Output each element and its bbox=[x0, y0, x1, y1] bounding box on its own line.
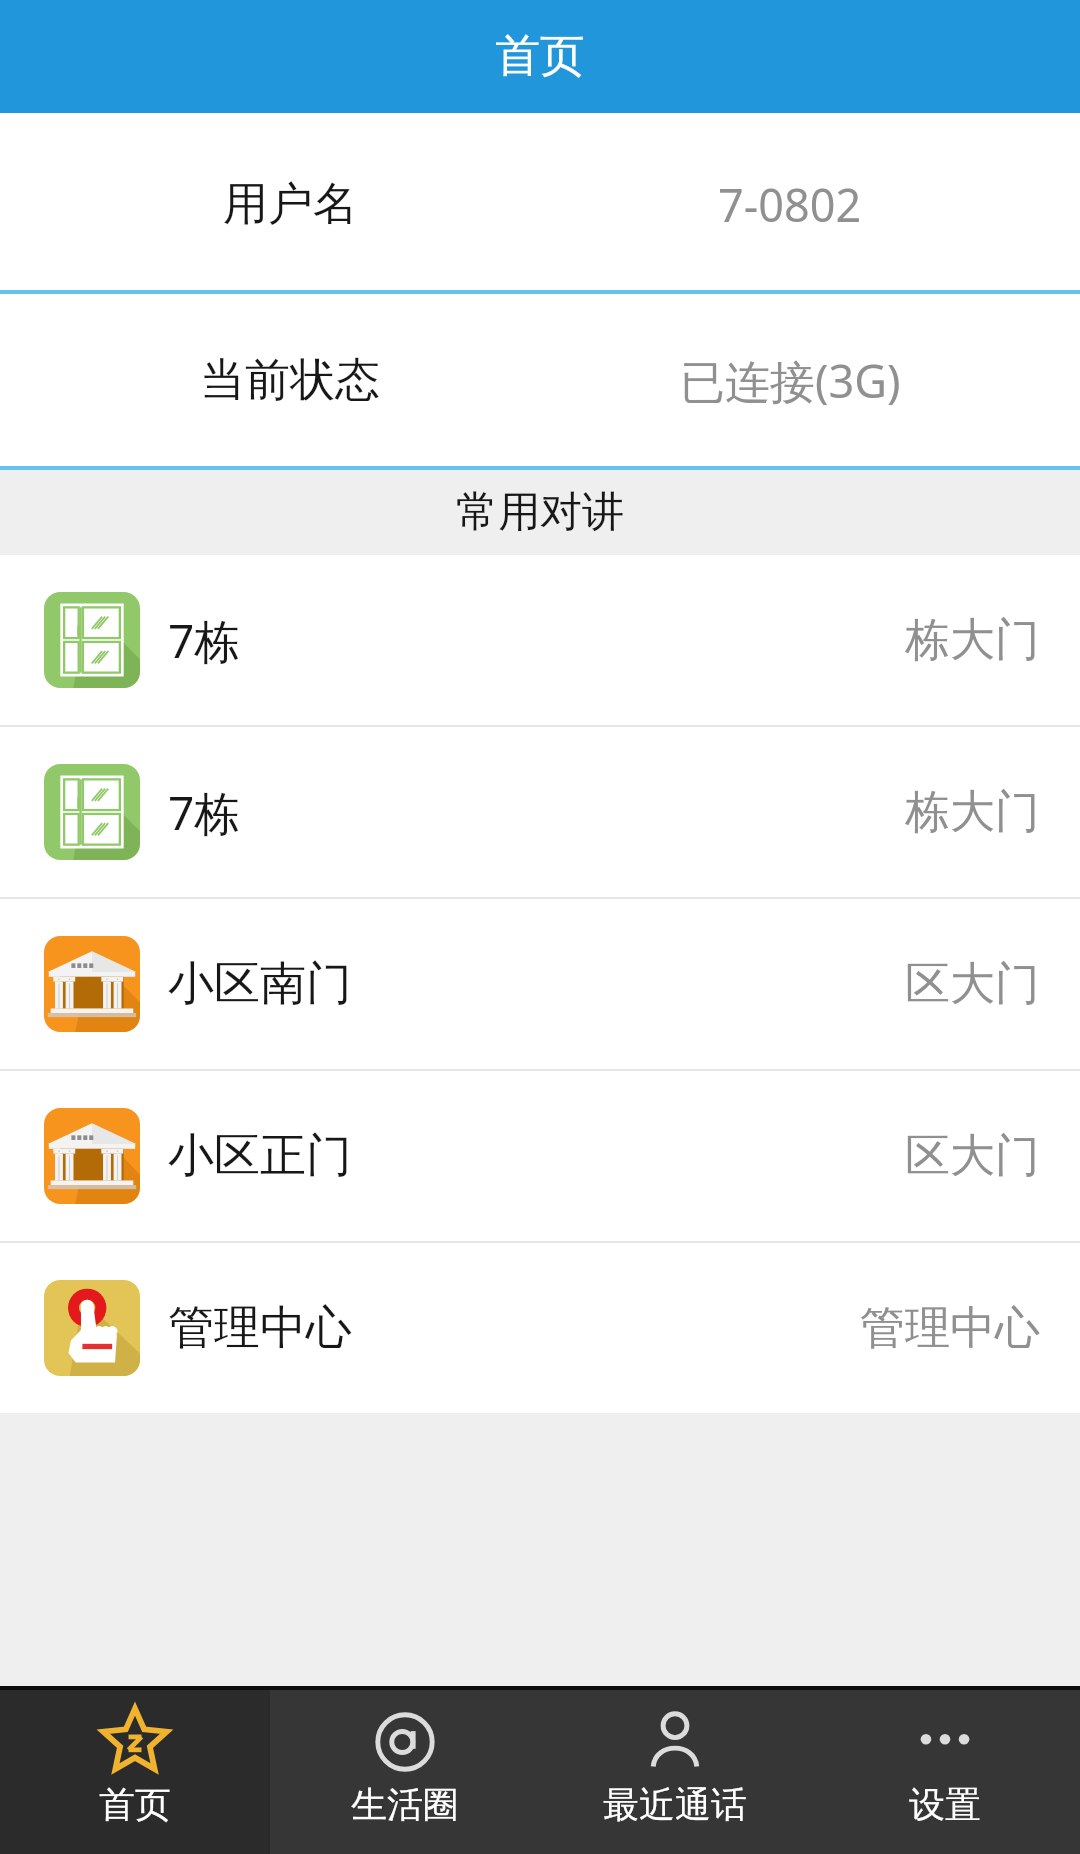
button[interactable]: 最近通话 bbox=[540, 1690, 810, 1854]
staticText: 区大门 bbox=[905, 956, 1040, 1013]
staticText: 栋大门 bbox=[905, 612, 1040, 669]
button[interactable]: 小区正门 bbox=[0, 1071, 1080, 1241]
button[interactable]: 生活圈 bbox=[270, 1690, 540, 1854]
staticText: 常用对讲 bbox=[456, 486, 624, 539]
staticText: 区大门 bbox=[905, 1128, 1040, 1185]
staticText: 设置 bbox=[909, 1782, 981, 1827]
staticText: 当前状态 bbox=[200, 352, 380, 409]
other: 设置 bbox=[911, 1708, 979, 1776]
staticText: 管理中心 bbox=[860, 1300, 1040, 1357]
button[interactable]: 当前状态 bbox=[0, 294, 1080, 466]
other: 生活圈 bbox=[371, 1708, 439, 1776]
staticText: 生活圈 bbox=[351, 1782, 459, 1827]
button[interactable]: 管理中心 bbox=[0, 1243, 1080, 1413]
staticText: 已连接(3G) bbox=[680, 350, 901, 411]
staticText: 首页 bbox=[99, 1782, 171, 1827]
button[interactable]: 7栋 bbox=[0, 555, 1080, 725]
staticText: 首页 bbox=[495, 28, 585, 85]
button[interactable]: 7栋 bbox=[0, 727, 1080, 897]
staticText: 用户名 bbox=[223, 176, 358, 233]
staticText: 管理中心 bbox=[168, 1299, 352, 1357]
staticText: 7栋 bbox=[168, 609, 241, 672]
button[interactable]: 首页 bbox=[0, 1690, 270, 1854]
staticText: 小区正门 bbox=[168, 1127, 352, 1185]
button[interactable]: 设置 bbox=[810, 1690, 1080, 1854]
other: 最近通话 bbox=[641, 1708, 709, 1776]
staticText: 小区南门 bbox=[168, 955, 352, 1013]
staticText: 7栋 bbox=[168, 781, 241, 844]
staticText: 栋大门 bbox=[905, 784, 1040, 841]
staticText: 最近通话 bbox=[603, 1782, 747, 1827]
button[interactable]: 用户名 bbox=[0, 118, 1080, 290]
staticText: 7-0802 bbox=[718, 174, 862, 235]
other: 首页 bbox=[101, 1708, 169, 1776]
button[interactable]: 小区南门 bbox=[0, 899, 1080, 1069]
